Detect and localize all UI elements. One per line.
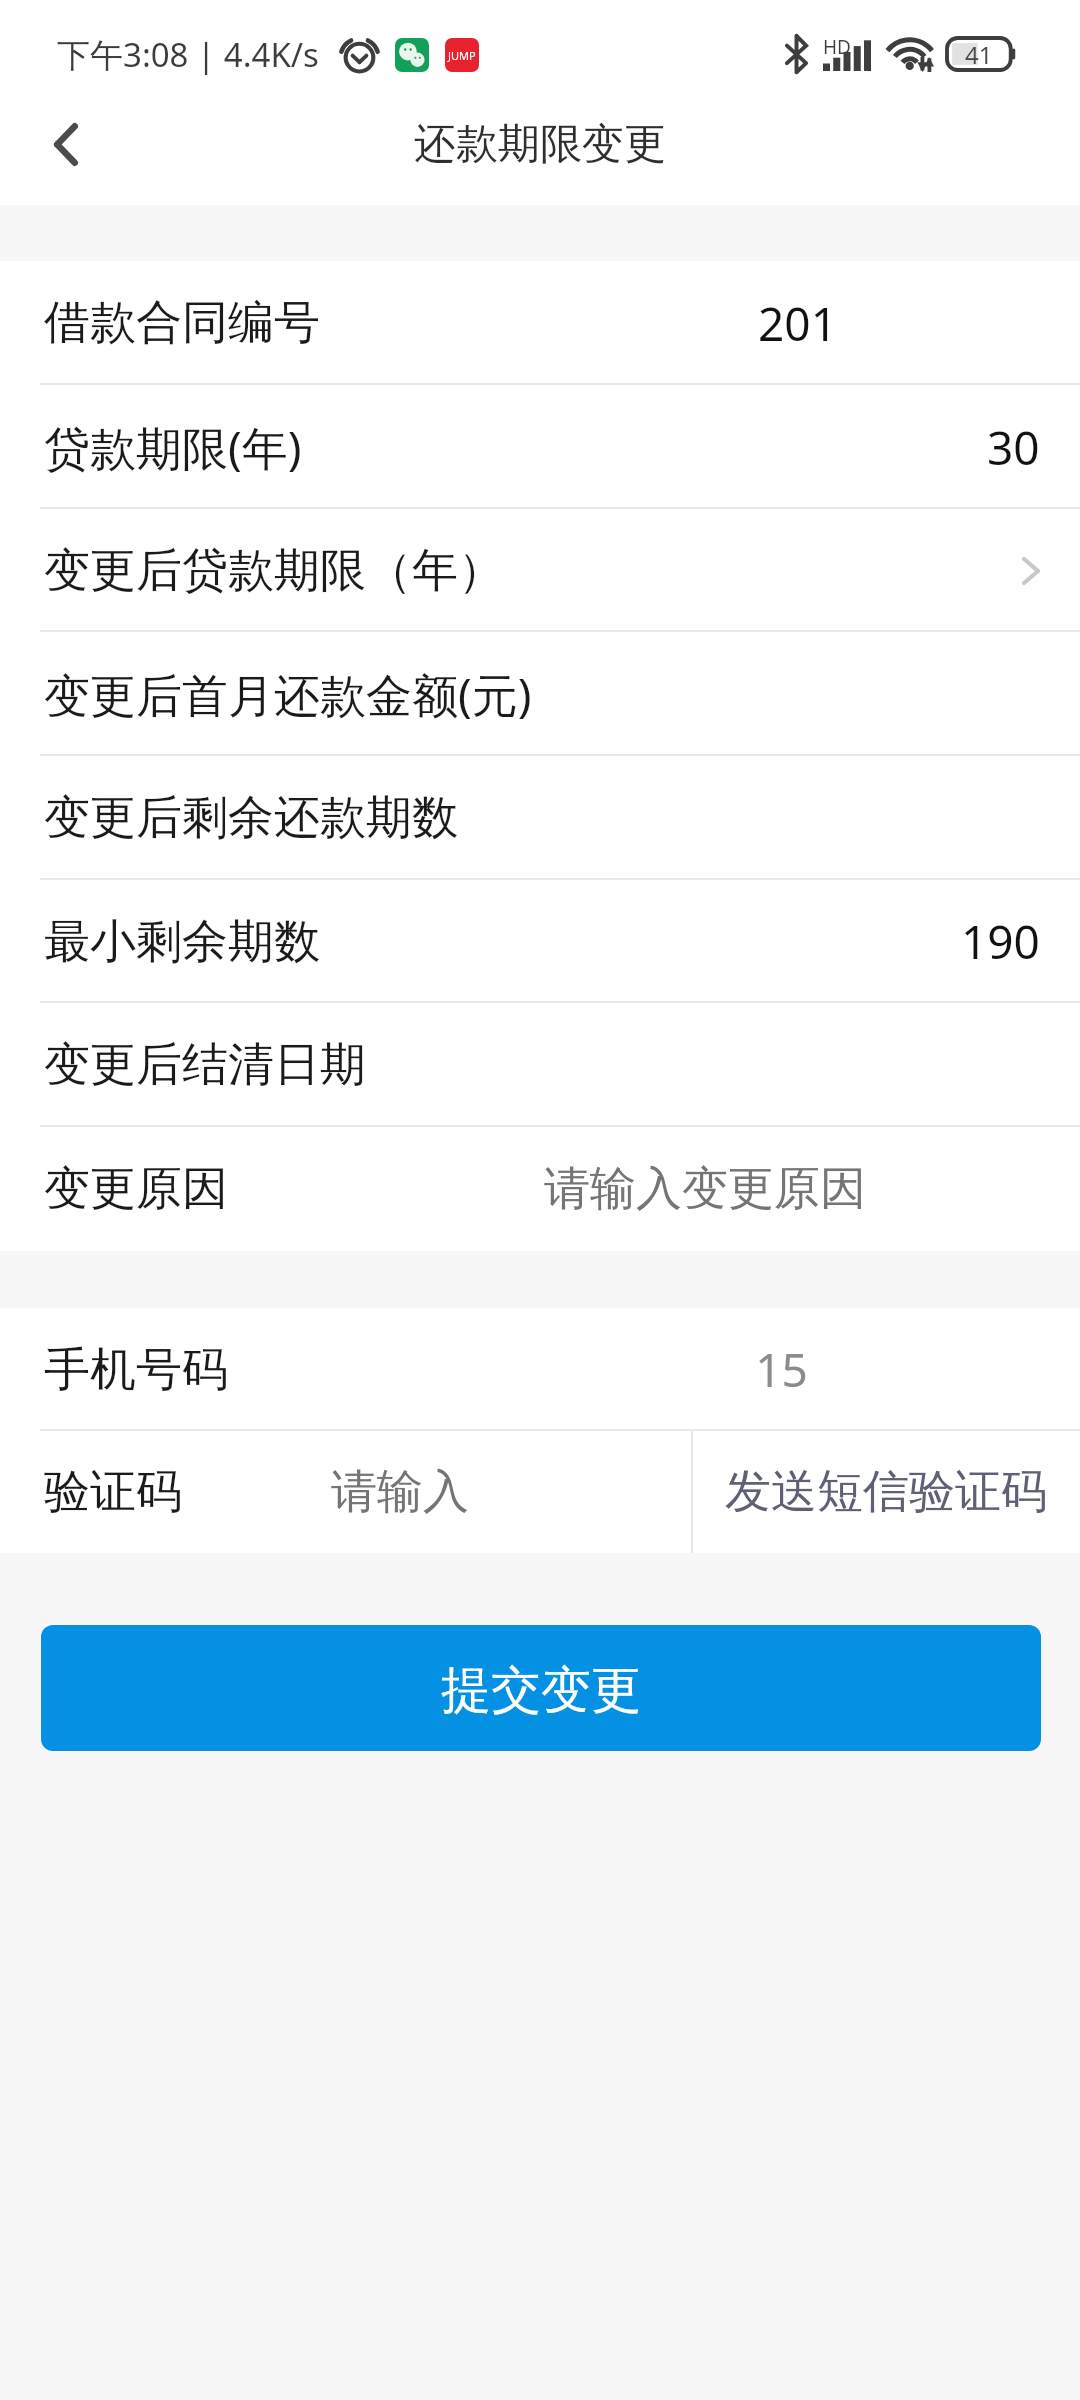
- staticText: 变更后剩余还款期数: [44, 789, 458, 847]
- staticText: 贷款期限(年): [44, 416, 302, 479]
- staticText: 变更后首月还款金额(元): [44, 663, 532, 726]
- staticText: 30: [987, 416, 1040, 479]
- staticText: 下午3:08 | 4.4K/s: [57, 32, 319, 77]
- staticText: 190: [961, 910, 1040, 973]
- staticText: 发送短信验证码: [725, 1463, 1047, 1521]
- button[interactable]: 变更后剩余还款期数: [0, 756, 1080, 880]
- staticText: 借款合同编号: [44, 294, 320, 352]
- button[interactable]: 变更后结清日期: [0, 1003, 1080, 1127]
- button[interactable]: 变更后贷款期限（年）: [0, 509, 1080, 632]
- staticText: 最小剩余期数: [44, 913, 320, 971]
- button[interactable]: 借款合同编号: [0, 261, 1080, 385]
- button[interactable]: 变更后首月还款金额(元): [0, 632, 1080, 756]
- staticText: 手机号码: [44, 1341, 228, 1399]
- staticText: 验证码: [44, 1463, 182, 1521]
- staticText: 41: [965, 38, 993, 70]
- staticText: HD: [823, 34, 851, 60]
- staticText: 请输入变更原因: [544, 1160, 866, 1218]
- button[interactable]: Back: [14, 92, 118, 197]
- button[interactable]: 变更原因: [0, 1127, 1080, 1251]
- button[interactable]: 贷款期限(年): [0, 385, 1080, 509]
- staticText: 201: [758, 292, 837, 355]
- staticText: 提交变更: [441, 1659, 641, 1722]
- staticText: JUMP: [448, 48, 476, 63]
- staticText: 15: [755, 1338, 808, 1401]
- staticText: 变更后结清日期: [44, 1036, 366, 1094]
- staticText: 请输入: [331, 1463, 469, 1521]
- button[interactable]: 提交变更: [41, 1625, 1041, 1751]
- button[interactable]: 最小剩余期数: [0, 880, 1080, 1003]
- other: Open: [1022, 557, 1040, 585]
- button[interactable]: 手机号码: [0, 1308, 1080, 1431]
- staticText: 变更后贷款期限（年）: [44, 542, 504, 600]
- button[interactable]: 验证码: [0, 1431, 691, 1553]
- staticText: 还款期限变更: [414, 118, 666, 171]
- staticText: 变更原因: [44, 1160, 228, 1218]
- button[interactable]: 发送短信验证码: [691, 1431, 1080, 1553]
